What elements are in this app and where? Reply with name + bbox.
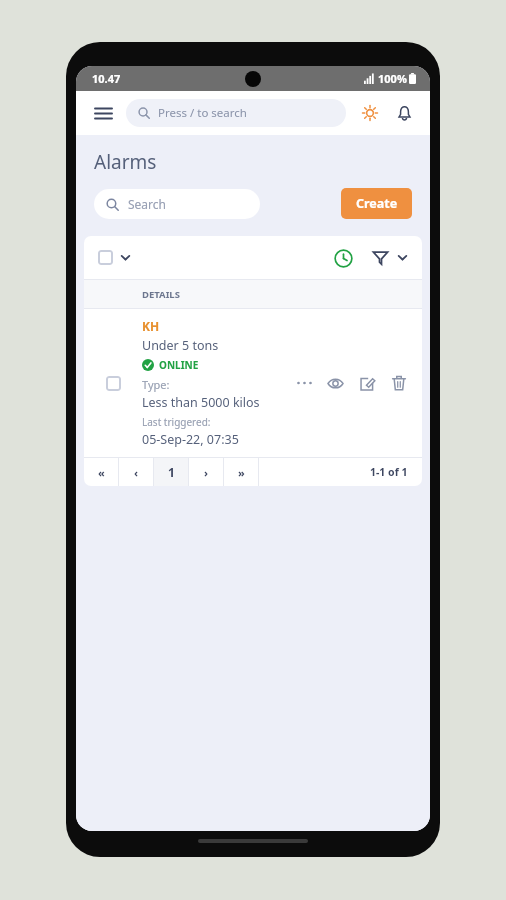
- staticText: KH: [142, 318, 160, 334]
- staticText: Under 5 tons: [142, 337, 219, 354]
- button[interactable]: ‹: [119, 458, 153, 486]
- staticText: Press / to search: [158, 105, 247, 121]
- staticText: 1-1 of 1: [370, 465, 408, 479]
- staticText: ‹: [134, 465, 139, 480]
- staticText: Search: [128, 196, 166, 212]
- staticText: Last triggered:: [142, 415, 211, 429]
- staticText: Less than 5000 kilos: [142, 394, 260, 411]
- button[interactable]: Notifications: [390, 99, 418, 127]
- staticText: »: [238, 465, 245, 480]
- staticText: 100%: [378, 71, 407, 86]
- button[interactable]: «: [84, 458, 118, 486]
- button[interactable]: ›: [189, 458, 223, 486]
- button[interactable]: Search: [94, 189, 260, 219]
- staticText: Create: [356, 195, 398, 212]
- button[interactable]: Recent: [330, 245, 356, 271]
- button[interactable]: More options: [292, 371, 316, 395]
- button[interactable]: Press / to search: [126, 99, 346, 127]
- button[interactable]: View: [322, 370, 348, 396]
- button[interactable]: »: [224, 458, 258, 486]
- staticText: DETAILS: [142, 288, 180, 301]
- staticText: ›: [204, 465, 209, 480]
- staticText: 1: [168, 464, 175, 480]
- staticText: Alarms: [94, 149, 157, 175]
- button[interactable]: Theme: [356, 99, 384, 127]
- button[interactable]: [96, 248, 133, 267]
- staticText: ONLINE: [159, 358, 199, 372]
- staticText: «: [98, 465, 105, 480]
- staticText: Type:: [142, 377, 170, 392]
- button[interactable]: Edit: [354, 370, 380, 396]
- staticText: 05-Sep-22, 07:35: [142, 431, 239, 448]
- staticText: 10.47: [92, 71, 121, 86]
- button[interactable]: Menu: [88, 98, 118, 128]
- button[interactable]: Delete: [386, 370, 412, 396]
- button[interactable]: KH: [84, 309, 422, 457]
- button[interactable]: Filter: [370, 247, 410, 268]
- button[interactable]: Create: [341, 188, 412, 219]
- button[interactable]: 1: [154, 458, 188, 486]
